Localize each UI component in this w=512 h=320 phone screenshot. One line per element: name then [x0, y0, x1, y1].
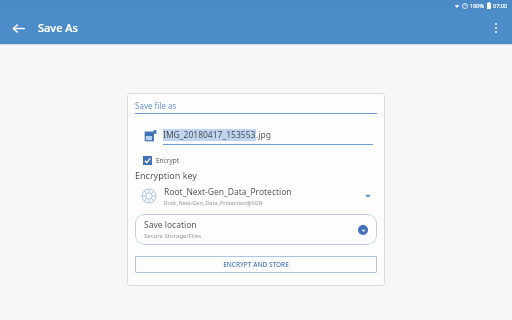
staticText: Encrypt — [156, 156, 180, 165]
button[interactable]: More options — [484, 16, 508, 40]
staticText: Root_Next-Gen_Data_Protection — [164, 186, 292, 198]
staticText: Save location — [144, 219, 197, 231]
button[interactable]: Encrypt — [143, 156, 180, 165]
staticText: Save file as — [135, 100, 177, 111]
button[interactable]: Save location — [135, 214, 377, 245]
staticText: 100% — [470, 2, 485, 9]
staticText: IMG_20180417_153553 — [163, 129, 256, 141]
staticText: Save As — [38, 20, 78, 35]
button[interactable]: Back — [6, 16, 30, 40]
staticText: 07:00 — [493, 2, 508, 9]
staticText: ENCRYPT AND STORE — [223, 260, 289, 269]
staticText: .jpg — [256, 129, 271, 141]
button[interactable]: ENCRYPT AND STORE — [135, 256, 377, 273]
button[interactable]: Root_Next-Gen_Data_Protection — [135, 186, 377, 206]
staticText: Secure Storage/Files — [144, 232, 202, 240]
staticText: Root_Next-Gen_Data_Protection@SGN — [164, 199, 263, 206]
staticText: Encryption key — [135, 169, 197, 181]
button[interactable]: Select key — [361, 189, 375, 203]
